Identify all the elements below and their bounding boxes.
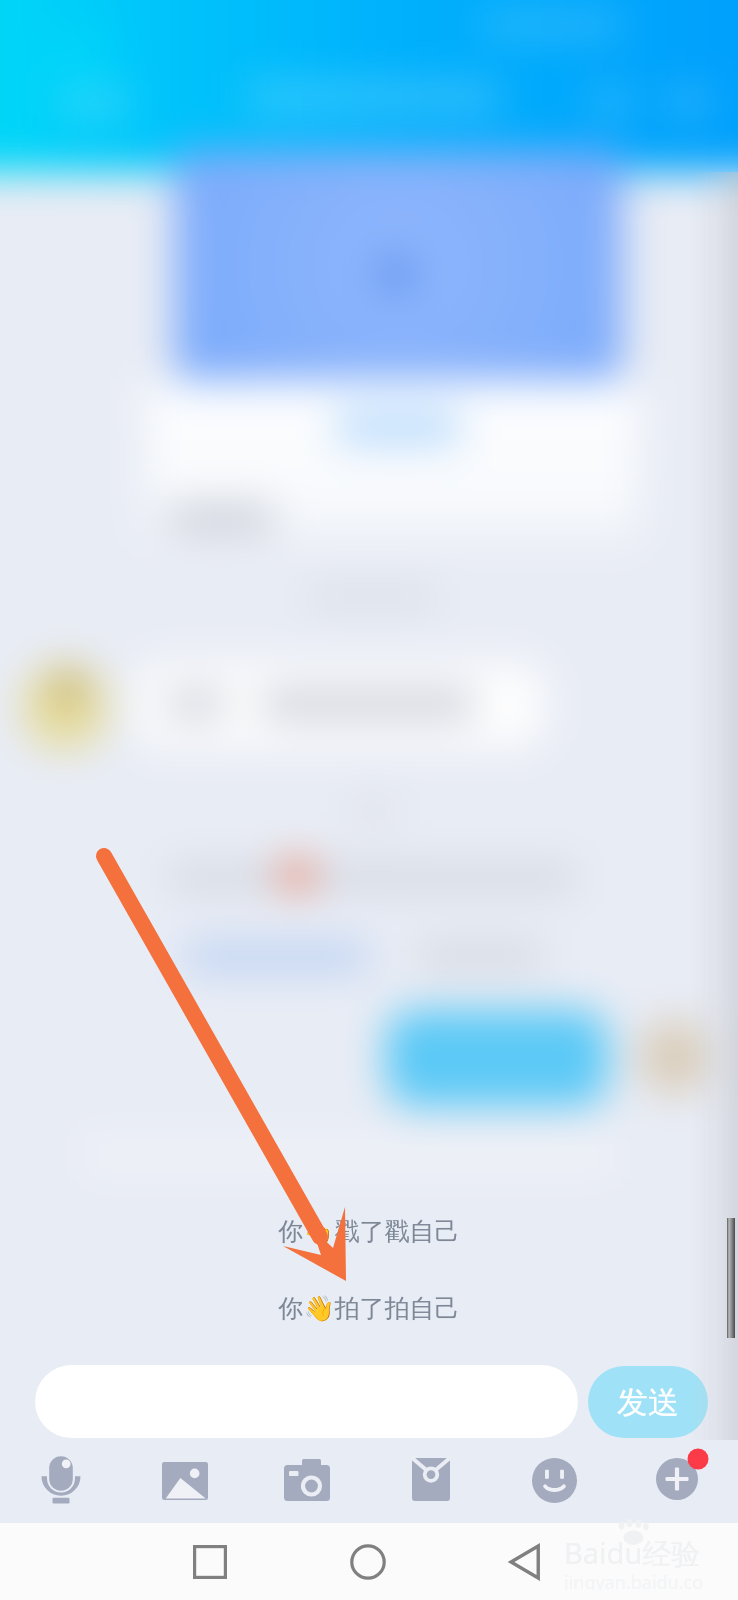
button[interactable]: Back <box>480 1523 572 1600</box>
button[interactable]: Recents <box>164 1523 256 1600</box>
staticText: Baidu经验 <box>564 1533 701 1573</box>
button[interactable]: Photo <box>144 1440 226 1522</box>
button[interactable]: 发送 <box>588 1366 708 1438</box>
button[interactable]: Emoji <box>513 1439 595 1521</box>
staticText: 发送 <box>617 1383 679 1422</box>
button[interactable]: Message input <box>35 1365 578 1438</box>
button[interactable]: More options <box>636 1438 718 1520</box>
button[interactable]: Home <box>322 1523 414 1600</box>
staticText: 你👋拍了拍自己 <box>0 1293 738 1324</box>
staticText: 你👆戳了戳自己 <box>0 1216 738 1247</box>
button[interactable]: Camera <box>266 1439 348 1521</box>
button[interactable]: Voice message <box>20 1437 102 1519</box>
button[interactable]: Red packet <box>390 1438 472 1520</box>
